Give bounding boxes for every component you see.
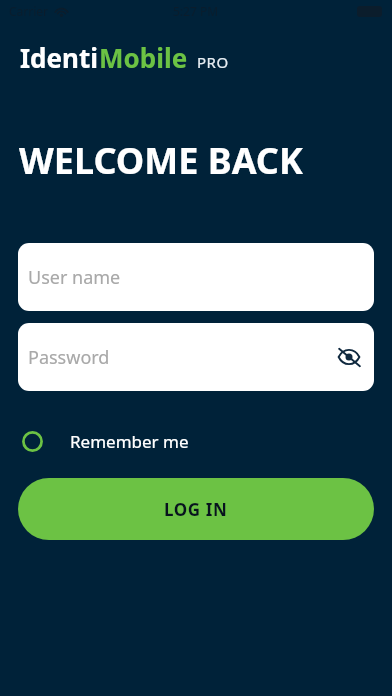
button[interactable]: Password xyxy=(18,323,374,391)
staticText: Remember me xyxy=(70,430,189,453)
button[interactable]: LOG IN xyxy=(18,478,374,540)
staticText: Identi xyxy=(20,40,99,75)
staticText: PRO xyxy=(197,52,229,72)
staticText: Password xyxy=(28,345,110,370)
button[interactable]: Remember me xyxy=(16,425,201,458)
button[interactable]: User name xyxy=(18,243,374,311)
staticText: 5:27 PM xyxy=(173,3,219,19)
staticText: Mobile xyxy=(99,40,188,75)
staticText: LOG IN xyxy=(164,498,228,521)
other: Show password xyxy=(336,344,362,370)
staticText: Carrier xyxy=(9,3,49,19)
staticText: WELCOME BACK xyxy=(19,136,303,185)
staticText: User name xyxy=(28,265,121,290)
